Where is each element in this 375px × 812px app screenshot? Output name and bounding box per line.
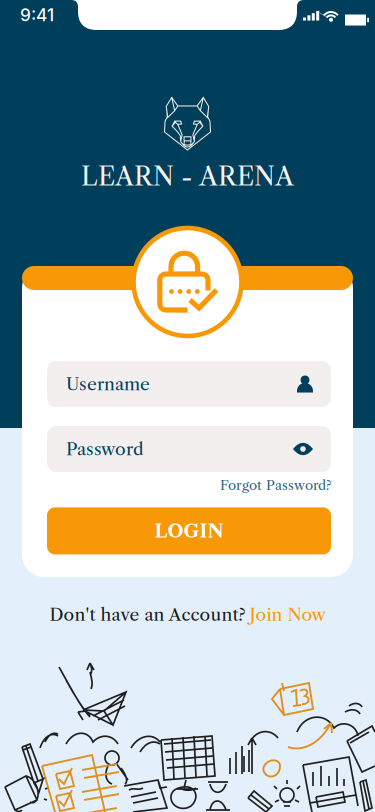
button[interactable]: Join Now	[249, 604, 325, 625]
staticText: LOGIN	[154, 519, 223, 542]
button[interactable]: Password	[47, 426, 331, 472]
staticText: LEARN - ARENA	[81, 161, 294, 192]
staticText: Password	[66, 438, 144, 460]
staticText: 9:41	[20, 4, 54, 25]
button[interactable]: LOGIN	[47, 507, 331, 554]
staticText: Username	[66, 373, 150, 395]
staticText: Don't have an Account?	[49, 604, 245, 625]
staticText: Forgot Password?	[220, 477, 331, 493]
button[interactable]: Forgot Password?	[220, 475, 331, 495]
staticText: Join Now	[249, 604, 325, 625]
button[interactable]: Username	[47, 361, 331, 407]
